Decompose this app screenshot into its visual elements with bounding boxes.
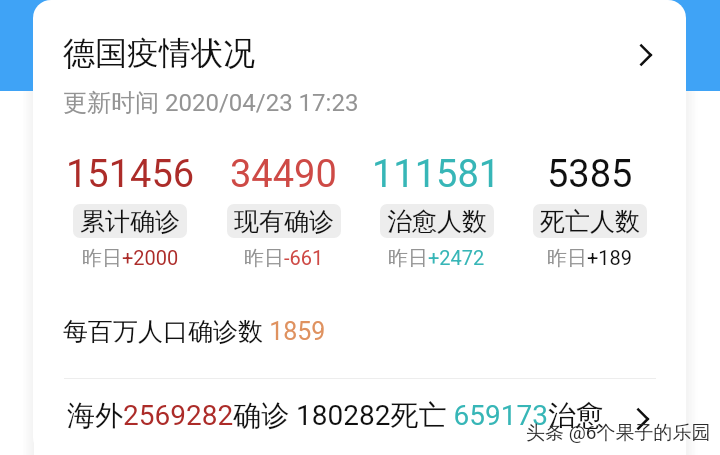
staticText: 昨日+189 [547, 246, 633, 271]
staticText: 111581 [372, 152, 501, 197]
button[interactable]: 每百万人口确诊数 1859 [33, 305, 686, 357]
staticText: 治愈人数 [387, 206, 487, 237]
staticText: 现有确诊 [234, 206, 334, 237]
button[interactable]: 海外2569282确诊 180282死亡 659173治愈 [33, 388, 686, 442]
staticText: 5385 [547, 152, 633, 197]
staticText: 昨日+2472 [388, 246, 485, 271]
staticText: 每百万人口确诊数 1859 [63, 316, 326, 347]
staticText: 德国疫情状况 [63, 33, 255, 73]
staticText: 更新时间 2020/04/23 17:23 [63, 88, 359, 118]
staticText: 昨日-661 [244, 246, 324, 271]
button[interactable]: 德国疫情状况 [33, 30, 686, 76]
staticText: 海外2569282确诊 180282死亡 659173治愈 [67, 398, 604, 433]
staticText: 累计确诊 [80, 206, 180, 237]
staticText: 34490 [230, 152, 337, 197]
other: More details [629, 401, 657, 429]
staticText: 死亡人数 [540, 206, 640, 237]
other: More details [632, 39, 660, 67]
staticText: 昨日+2000 [82, 246, 179, 271]
staticText: 151456 [66, 152, 195, 197]
staticText: 头条 @6个果子的乐园 [526, 421, 711, 445]
